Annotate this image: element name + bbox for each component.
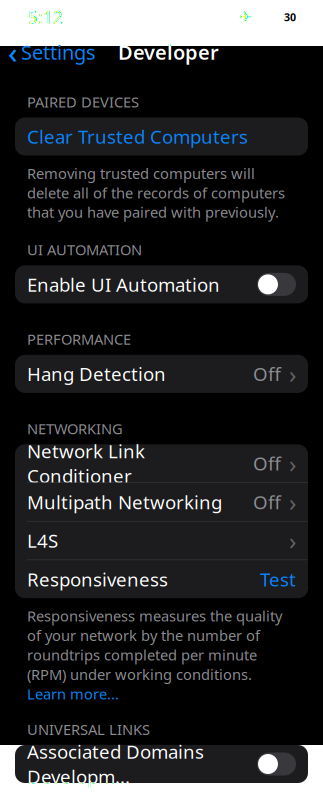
staticText: Removing trusted computers will delete a… [27, 163, 285, 222]
staticText: 令 [258, 8, 273, 26]
button[interactable]: Network Link Conditioner [15, 444, 308, 482]
staticText: Settings [21, 39, 96, 65]
staticText: PAIRED DEVICES [27, 92, 139, 111]
staticText: Off [253, 451, 281, 476]
button[interactable]: Hang Detection [15, 355, 308, 393]
button[interactable]: Multipath Networking [15, 483, 308, 521]
staticText: PERFORMANCE [27, 329, 131, 349]
staticText: ‹ [8, 32, 18, 71]
staticText: Learn more... [27, 684, 119, 704]
staticText: Test [260, 567, 296, 591]
staticText: 5:12 [28, 5, 63, 28]
staticText: Multipath Networking [27, 489, 222, 514]
button[interactable]: Responsiveness [15, 560, 308, 598]
staticText: Enable UI Automation [27, 272, 220, 297]
staticText: UNIVERSAL LINKS [27, 719, 150, 739]
staticText: UI AUTOMATION [27, 240, 142, 259]
button[interactable]: Enable UI Automation [15, 265, 308, 303]
staticText: 30 [284, 10, 296, 24]
button[interactable]: Associated Domains Developm... [15, 745, 308, 783]
staticText: Clear Trusted Computers [27, 124, 248, 149]
staticText: › [289, 525, 296, 556]
staticText: Network Link Conditioner [27, 439, 145, 488]
staticText: › [289, 486, 296, 518]
staticText: Responsiveness measures the quality of y… [27, 606, 282, 684]
staticText: Developer [118, 39, 219, 65]
button[interactable]: ‹ [8, 32, 96, 71]
staticText: › [289, 447, 296, 479]
staticText: › [289, 358, 296, 390]
button[interactable]: Clear Trusted Computers [15, 117, 308, 155]
staticText: Off [253, 489, 281, 514]
staticText: ✈ [239, 8, 252, 26]
staticText: Off [253, 361, 281, 386]
staticText: Responsiveness [27, 567, 168, 591]
staticText: L4S [27, 528, 58, 553]
staticText: Hang Detection [27, 361, 166, 386]
staticText: NETWORKING [27, 419, 123, 438]
staticText: Associated Domains Developm... [27, 739, 204, 789]
button[interactable]: L4S [15, 521, 308, 559]
